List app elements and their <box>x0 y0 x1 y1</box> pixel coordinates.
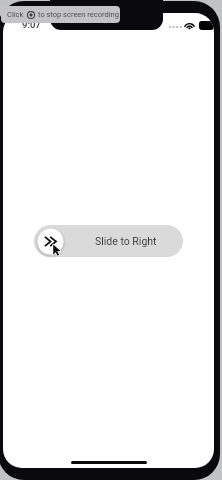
staticText: Slide to Right <box>95 235 157 247</box>
button[interactable]: Slide to Right <box>34 225 183 257</box>
button[interactable]: Click <box>1 6 120 23</box>
staticText: 9:07 <box>22 19 41 30</box>
button[interactable]: Slide to Right <box>33 224 68 259</box>
staticText: Click <box>7 10 24 19</box>
staticText: to stop screen recording <box>38 10 119 19</box>
